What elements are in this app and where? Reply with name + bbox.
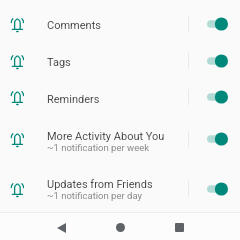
button[interactable]: Toggle Reminders bbox=[189, 79, 240, 115]
button[interactable]: Toggle Tags bbox=[189, 43, 240, 79]
staticText: More Activity About You bbox=[47, 130, 165, 143]
staticText: ~1 notification per day bbox=[47, 190, 142, 201]
staticText: Updates from Friends bbox=[47, 178, 153, 191]
button[interactable]: Toggle More Activity About You bbox=[189, 115, 240, 159]
button[interactable]: Tags bbox=[0, 43, 188, 79]
staticText: Comments bbox=[47, 19, 101, 32]
staticText: Tags bbox=[47, 56, 71, 69]
button[interactable]: Home bbox=[100, 213, 140, 240]
button[interactable]: Updates from Friends bbox=[0, 159, 188, 209]
button[interactable]: Comments bbox=[0, 5, 188, 43]
button[interactable]: Reminders bbox=[0, 79, 188, 115]
button[interactable]: Recent apps bbox=[159, 213, 199, 240]
button[interactable]: Back bbox=[41, 213, 81, 240]
button[interactable]: Toggle Comments bbox=[189, 5, 240, 43]
staticText: ~1 notification per week bbox=[47, 142, 150, 153]
button[interactable]: Toggle Updates from Friends bbox=[189, 159, 240, 209]
staticText: Reminders bbox=[47, 93, 100, 106]
button[interactable]: More Activity About You bbox=[0, 115, 188, 159]
